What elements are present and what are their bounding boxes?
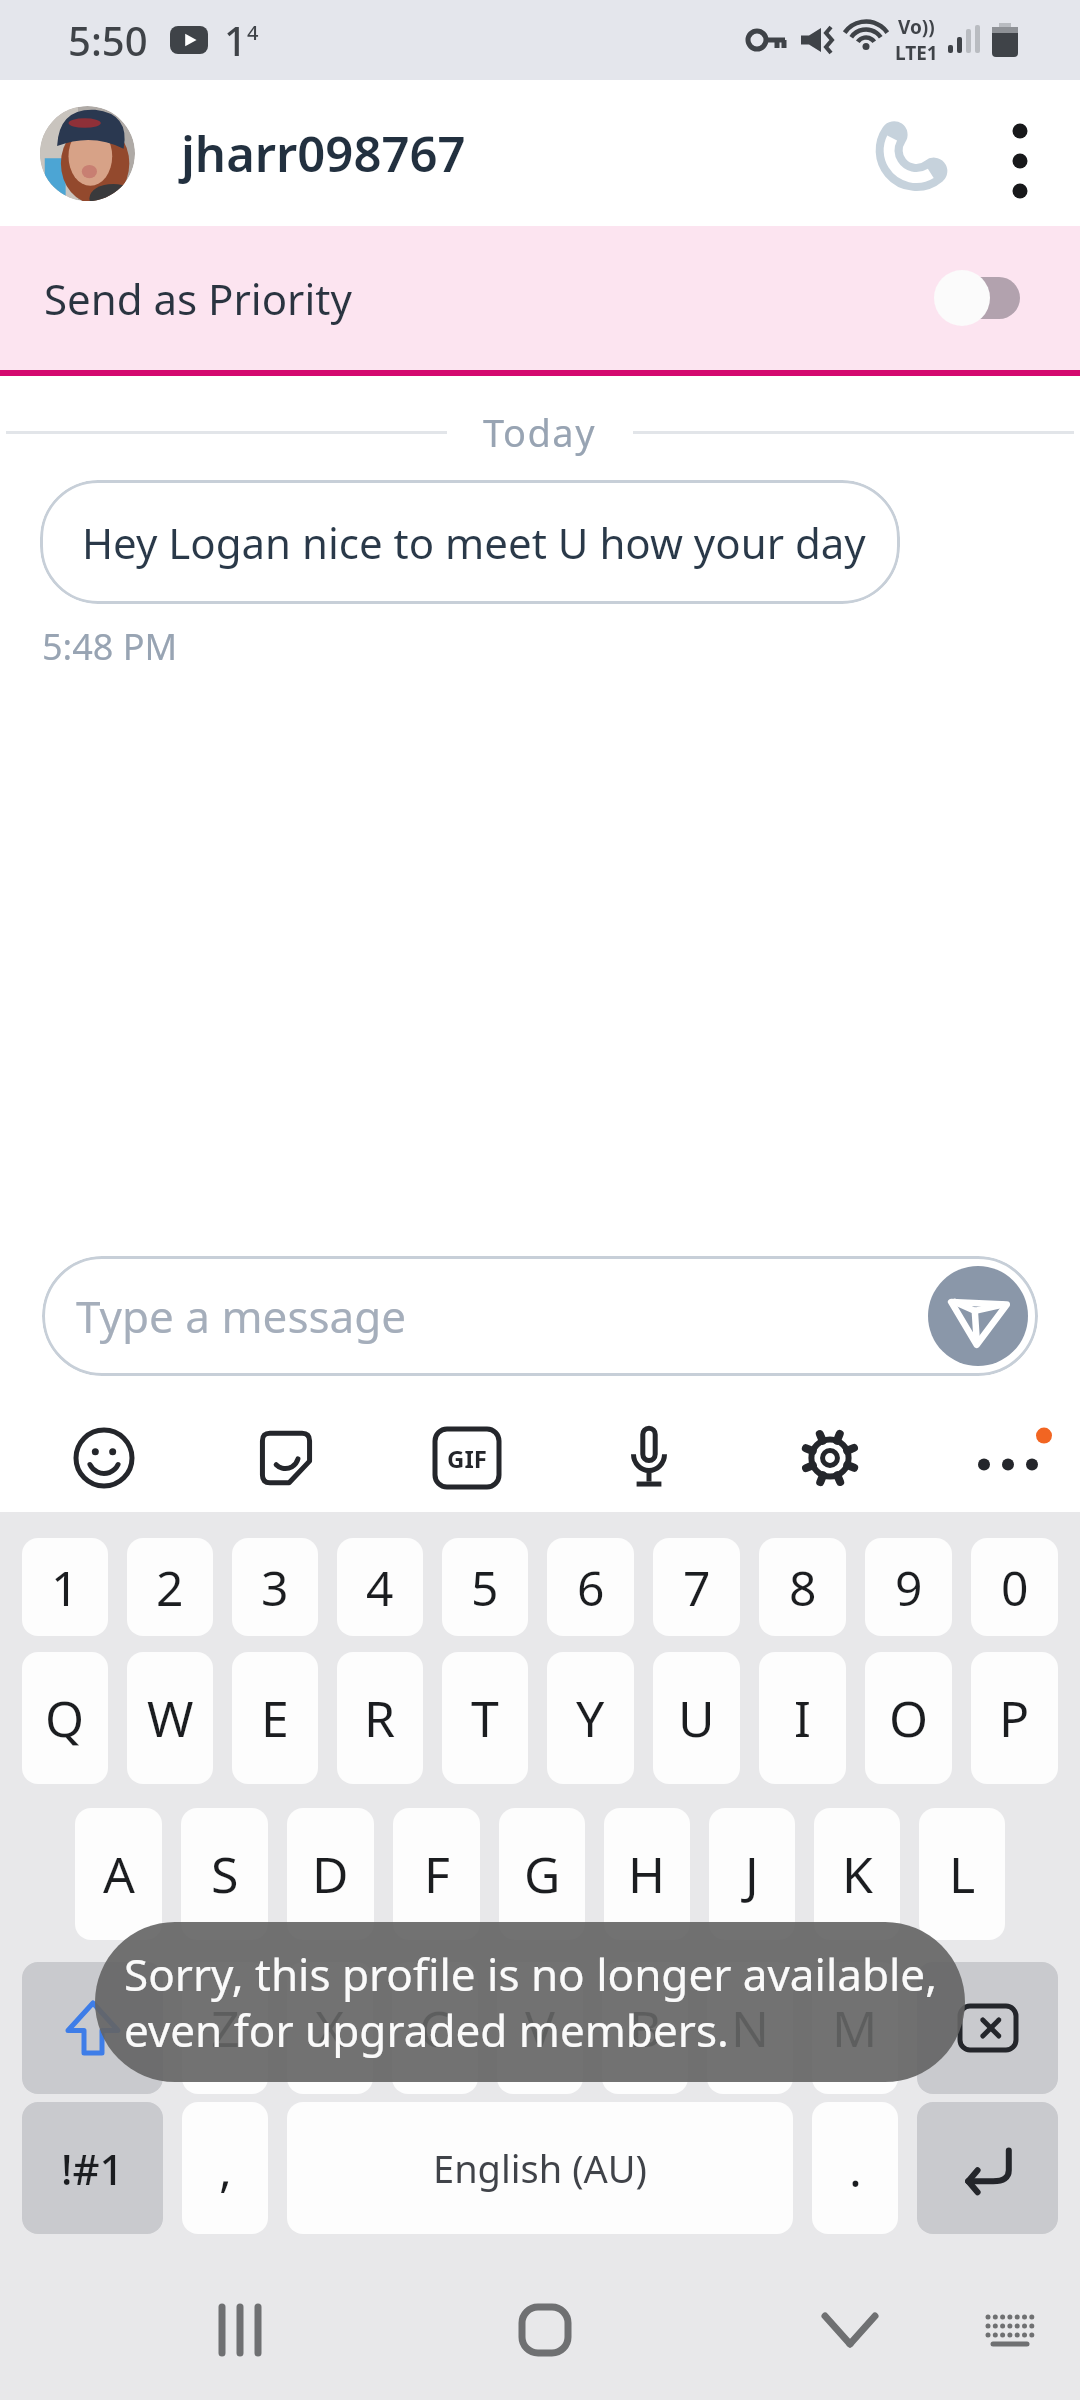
button[interactable]: 4 bbox=[337, 1538, 423, 1636]
button[interactable]: S bbox=[181, 1808, 268, 1940]
staticText: O bbox=[889, 1684, 929, 1752]
staticText: 6 bbox=[577, 1555, 605, 1620]
staticText: English (AU) bbox=[433, 2142, 648, 2194]
button[interactable]: 3 bbox=[232, 1538, 318, 1636]
button[interactable] bbox=[990, 123, 1050, 183]
button[interactable] bbox=[934, 270, 1020, 326]
staticText: D bbox=[312, 1840, 349, 1908]
staticText: Vo)) bbox=[898, 14, 935, 40]
button[interactable] bbox=[870, 108, 960, 198]
staticText: , bbox=[219, 2136, 232, 2201]
button[interactable]: 1 bbox=[22, 1538, 108, 1636]
button[interactable]: !#1 bbox=[22, 2102, 163, 2234]
staticText: P bbox=[999, 1684, 1030, 1752]
staticText: E bbox=[261, 1684, 289, 1752]
staticText: Z bbox=[211, 1994, 240, 2062]
staticText: Y bbox=[576, 1684, 605, 1752]
button[interactable]: 9 bbox=[865, 1538, 952, 1636]
button[interactable]: E bbox=[232, 1652, 318, 1784]
button[interactable]: Type a message bbox=[42, 1256, 1038, 1376]
button[interactable]: H bbox=[604, 1808, 690, 1940]
staticText: 1 bbox=[51, 1555, 79, 1620]
button[interactable]: R bbox=[337, 1652, 423, 1784]
button[interactable]: Q bbox=[22, 1652, 108, 1784]
button[interactable] bbox=[820, 2300, 880, 2360]
staticText: V bbox=[525, 1994, 555, 2062]
button[interactable]: D bbox=[287, 1808, 374, 1940]
staticText: R bbox=[364, 1684, 396, 1752]
button[interactable]: A bbox=[75, 1808, 162, 1940]
button[interactable] bbox=[64, 1418, 144, 1498]
button[interactable] bbox=[515, 2300, 575, 2360]
staticText: . bbox=[849, 2136, 862, 2201]
button[interactable]: X bbox=[287, 1962, 373, 2094]
button[interactable]: 8 bbox=[759, 1538, 846, 1636]
staticText: 5:48 PM bbox=[42, 622, 178, 671]
button[interactable]: 0 bbox=[971, 1538, 1058, 1636]
staticText: H bbox=[628, 1840, 666, 1908]
button[interactable]: L bbox=[919, 1808, 1005, 1940]
staticText: 1 bbox=[224, 13, 247, 67]
button[interactable]: Hey Logan nice to meet U how your day bbox=[40, 480, 900, 604]
staticText: !#1 bbox=[61, 2140, 124, 2197]
button[interactable]: , bbox=[182, 2102, 268, 2234]
staticText: GIF bbox=[447, 1442, 487, 1475]
button[interactable] bbox=[928, 1266, 1028, 1366]
staticText: 4 bbox=[366, 1555, 394, 1620]
staticText: T bbox=[471, 1684, 499, 1752]
staticText: X bbox=[315, 1994, 345, 2062]
button[interactable]: F bbox=[393, 1808, 480, 1940]
button[interactable] bbox=[917, 2102, 1058, 2234]
button[interactable] bbox=[917, 1962, 1058, 2094]
button[interactable]: 7 bbox=[653, 1538, 740, 1636]
staticText: Today bbox=[483, 406, 597, 458]
staticText: jharr098767 bbox=[181, 120, 466, 187]
button[interactable]: T bbox=[442, 1652, 528, 1784]
button[interactable]: Z bbox=[182, 1962, 268, 2094]
button[interactable] bbox=[972, 1418, 1052, 1498]
button[interactable]: 6 bbox=[547, 1538, 634, 1636]
button[interactable]: O bbox=[865, 1652, 952, 1784]
button[interactable] bbox=[210, 2300, 270, 2360]
staticText: 4 bbox=[247, 19, 259, 46]
staticText: 7 bbox=[683, 1555, 711, 1620]
staticText: 5 bbox=[471, 1555, 499, 1620]
button[interactable]: M bbox=[812, 1962, 898, 2094]
staticText: LTE1 bbox=[895, 40, 938, 66]
button[interactable]: 2 bbox=[127, 1538, 213, 1636]
staticText: Hey Logan nice to meet U how your day bbox=[82, 514, 866, 571]
staticText: C bbox=[419, 1994, 451, 2062]
staticText: Send as Priority bbox=[44, 270, 352, 327]
button[interactable]: 5 bbox=[442, 1538, 528, 1636]
staticText: G bbox=[524, 1840, 561, 1908]
button[interactable]: P bbox=[971, 1652, 1058, 1784]
button[interactable] bbox=[40, 106, 135, 201]
button[interactable]: . bbox=[812, 2102, 898, 2234]
staticText: F bbox=[424, 1840, 450, 1908]
button[interactable]: B bbox=[602, 1962, 688, 2094]
button[interactable]: K bbox=[814, 1808, 900, 1940]
button[interactable] bbox=[980, 2300, 1040, 2360]
staticText: S bbox=[211, 1840, 239, 1908]
button[interactable]: Y bbox=[547, 1652, 634, 1784]
staticText: 2 bbox=[156, 1555, 184, 1620]
button[interactable] bbox=[790, 1418, 870, 1498]
button[interactable] bbox=[22, 1962, 163, 2094]
staticText: 5:50 bbox=[68, 13, 148, 67]
button[interactable]: English (AU) bbox=[287, 2102, 793, 2234]
button[interactable]: V bbox=[497, 1962, 583, 2094]
button[interactable]: W bbox=[127, 1652, 213, 1784]
staticText: Q bbox=[45, 1684, 85, 1752]
staticText: L bbox=[949, 1840, 976, 1908]
button[interactable]: N bbox=[707, 1962, 793, 2094]
button[interactable]: U bbox=[653, 1652, 740, 1784]
button[interactable] bbox=[246, 1418, 326, 1498]
staticText: I bbox=[794, 1684, 811, 1752]
button[interactable] bbox=[609, 1418, 689, 1498]
button[interactable]: I bbox=[759, 1652, 846, 1784]
button[interactable]: G bbox=[499, 1808, 585, 1940]
button[interactable]: GIF bbox=[427, 1418, 507, 1498]
button[interactable]: Send as Priority bbox=[44, 226, 1020, 370]
button[interactable]: C bbox=[392, 1962, 478, 2094]
button[interactable]: J bbox=[709, 1808, 795, 1940]
